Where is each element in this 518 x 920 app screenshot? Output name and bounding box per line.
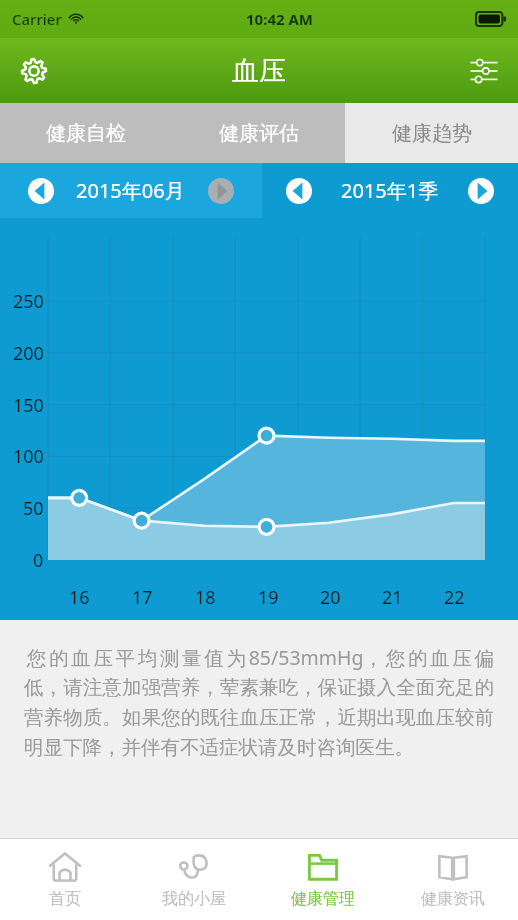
button[interactable]: Filter [458, 45, 510, 97]
staticText: 健康趋势 [392, 121, 472, 146]
button[interactable]: Next [206, 176, 236, 206]
staticText: 22 [444, 585, 465, 610]
staticText: 0 [33, 548, 44, 573]
staticText: 200 [13, 341, 44, 366]
staticText: 健康管理 [291, 889, 355, 909]
button[interactable]: Previous [0, 163, 262, 218]
button[interactable]: 健康趋势 [345, 103, 518, 163]
button[interactable]: Previous [284, 176, 314, 206]
staticText: 17 [132, 585, 153, 610]
staticText: Carrier [12, 9, 62, 29]
staticText: 我的小屋 [162, 889, 226, 909]
staticText: 2015年06月 [76, 177, 185, 204]
button[interactable]: 首页 [0, 839, 129, 920]
staticText: 18 [195, 585, 216, 610]
staticText: 20 [320, 585, 341, 610]
staticText: 健康资讯 [421, 889, 485, 909]
button[interactable]: 健康管理 [258, 839, 388, 920]
staticText: 10:42 AM [246, 9, 313, 29]
staticText: 16 [69, 585, 90, 610]
staticText: 血压 [232, 54, 286, 88]
staticText: 健康自检 [46, 121, 126, 146]
staticText: 健康评估 [219, 121, 299, 146]
staticText: 首页 [49, 889, 81, 909]
button[interactable]: Previous [262, 163, 518, 218]
button[interactable]: 健康资讯 [388, 839, 518, 920]
button[interactable]: 健康自检 [0, 103, 172, 163]
button[interactable]: Previous [26, 176, 56, 206]
staticText: 150 [13, 393, 44, 418]
button[interactable]: 健康评估 [172, 103, 345, 163]
staticText: 19 [258, 585, 279, 610]
button[interactable]: 我的小屋 [129, 839, 258, 920]
staticText: 50 [23, 496, 44, 521]
staticText: 250 [13, 289, 44, 314]
button[interactable]: Next [466, 176, 496, 206]
staticText: 100 [13, 444, 44, 469]
staticText: 2015年1季 [341, 177, 439, 204]
button[interactable]: Settings [8, 45, 60, 97]
staticText: 21 [382, 585, 403, 610]
staticText: 您的血压平均测量值为85/53mmHg，您的血压偏低，请注意加强营养，荤素兼吃，… [24, 644, 494, 760]
